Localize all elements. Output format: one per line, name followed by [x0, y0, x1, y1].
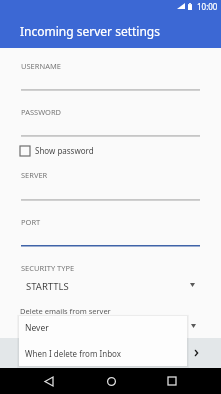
button[interactable]: Never	[19, 316, 187, 340]
staticText: USERNAME	[21, 61, 61, 71]
button[interactable]: Back	[36, 368, 62, 394]
staticText: STARTTLS	[26, 280, 69, 293]
button[interactable]: STARTTLS	[21, 276, 200, 294]
staticText: Incoming server settings	[20, 23, 160, 39]
staticText: PASSWORD	[21, 107, 62, 117]
staticText: When I delete from Inbox	[25, 348, 121, 359]
staticText: 10:00	[197, 1, 218, 12]
button[interactable]	[21, 56, 200, 90]
staticText: SERVER	[21, 170, 48, 180]
button[interactable]: When I delete from Inbox	[19, 339, 187, 367]
button[interactable]	[21, 166, 200, 200]
staticText: Show password	[35, 145, 94, 156]
staticText: PORT	[21, 217, 41, 227]
staticText: Delete emails from server	[20, 306, 111, 316]
button[interactable]	[21, 102, 200, 136]
button[interactable]: Show password	[20, 144, 100, 157]
button[interactable]: Next	[191, 338, 221, 368]
button[interactable]	[21, 212, 200, 246]
button[interactable]: Home	[98, 368, 124, 394]
staticText: Never	[25, 322, 49, 334]
staticText: SECURITY TYPE	[21, 263, 75, 273]
button[interactable]: Recent apps	[159, 368, 185, 394]
